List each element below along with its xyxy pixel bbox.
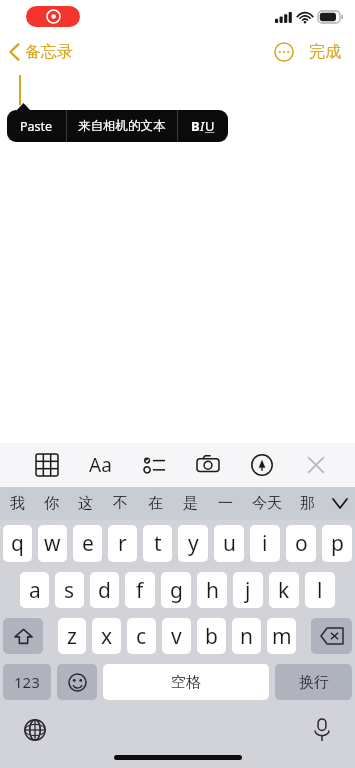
- button[interactable]: g: [161, 572, 191, 608]
- staticText: h: [206, 576, 219, 605]
- button[interactable]: Dictate: [311, 715, 333, 745]
- button[interactable]: 是: [173, 487, 208, 520]
- button[interactable]: i: [250, 525, 280, 562]
- staticText: m: [272, 622, 292, 651]
- button[interactable]: w: [38, 525, 67, 562]
- staticText: B: [191, 117, 200, 135]
- staticText: o: [295, 529, 308, 558]
- button[interactable]: Close keyboard: [299, 448, 333, 482]
- staticText: I: [200, 117, 205, 135]
- staticText: t: [154, 529, 162, 558]
- staticText: e: [82, 529, 94, 558]
- staticText: 在: [148, 494, 163, 513]
- button[interactable]: 在: [138, 487, 173, 520]
- staticText: d: [98, 576, 111, 605]
- button[interactable]: 备忘录: [0, 38, 81, 66]
- staticText: 不: [113, 494, 128, 513]
- button[interactable]: q: [3, 525, 32, 562]
- button[interactable]: h: [197, 572, 227, 608]
- button[interactable]: 这: [68, 487, 103, 520]
- button[interactable]: t: [143, 525, 172, 562]
- button[interactable]: 那: [290, 487, 325, 520]
- staticText: 来自相机的文本: [78, 118, 166, 134]
- staticText: j: [245, 576, 251, 605]
- button[interactable]: x: [92, 618, 121, 654]
- staticText: q: [11, 529, 24, 558]
- button[interactable]: l: [305, 572, 335, 608]
- staticText: 我: [10, 494, 25, 513]
- button[interactable]: Emoji: [57, 664, 97, 700]
- staticText: x: [101, 622, 113, 651]
- button[interactable]: 空格: [103, 664, 269, 700]
- button[interactable]: r: [108, 525, 137, 562]
- staticText: 空格: [171, 673, 201, 692]
- staticText: p: [331, 529, 344, 558]
- button[interactable]: c: [127, 618, 156, 654]
- button[interactable]: m: [267, 618, 296, 654]
- staticText: 是: [183, 494, 198, 513]
- button[interactable]: e: [73, 525, 102, 562]
- staticText: v: [171, 622, 182, 651]
- button[interactable]: Change keyboard: [20, 715, 50, 745]
- button[interactable]: Format text: [83, 446, 118, 484]
- staticText: c: [136, 622, 147, 651]
- button[interactable]: 今天: [243, 487, 290, 520]
- button[interactable]: Checklist: [137, 448, 171, 482]
- staticText: f: [136, 576, 144, 605]
- button[interactable]: a: [20, 572, 49, 608]
- button[interactable]: v: [162, 618, 191, 654]
- staticText: y: [188, 529, 199, 558]
- staticText: 换行: [299, 673, 329, 692]
- button[interactable]: y: [178, 525, 208, 562]
- button[interactable]: B: [178, 110, 228, 142]
- button[interactable]: Paste: [7, 110, 66, 142]
- staticText: U: [205, 117, 215, 135]
- staticText: w: [44, 529, 61, 558]
- staticText: g: [170, 576, 183, 605]
- staticText: 一: [218, 494, 233, 513]
- staticText: a: [29, 576, 41, 605]
- staticText: 你: [44, 494, 59, 513]
- button[interactable]: 你: [34, 487, 68, 520]
- button[interactable]: u: [214, 525, 244, 562]
- button[interactable]: 我: [0, 487, 34, 520]
- button[interactable]: Camera: [191, 448, 225, 482]
- staticText: 这: [78, 494, 93, 513]
- button[interactable]: Markup: [245, 448, 279, 482]
- staticText: 备忘录: [25, 42, 73, 62]
- staticText: s: [64, 576, 75, 605]
- button[interactable]: 来自相机的文本: [67, 110, 177, 142]
- button[interactable]: b: [197, 618, 226, 654]
- staticText: 那: [300, 494, 315, 513]
- staticText: z: [67, 622, 77, 651]
- button[interactable]: d: [90, 572, 119, 608]
- button[interactable]: 不: [103, 487, 138, 520]
- button[interactable]: k: [269, 572, 299, 608]
- button[interactable]: Expand candidates: [325, 487, 355, 520]
- staticText: i: [262, 529, 268, 558]
- staticText: 今天: [252, 494, 282, 513]
- button[interactable]: 完成: [307, 38, 343, 66]
- staticText: 123: [14, 672, 40, 692]
- staticText: l: [317, 576, 323, 605]
- staticText: n: [240, 622, 253, 651]
- button[interactable]: More options: [270, 38, 298, 66]
- button[interactable]: Backspace: [311, 618, 352, 654]
- button[interactable]: s: [55, 572, 84, 608]
- button[interactable]: 一: [208, 487, 243, 520]
- staticText: k: [278, 576, 290, 605]
- staticText: b: [205, 622, 218, 651]
- button[interactable]: j: [233, 572, 263, 608]
- button[interactable]: z: [58, 618, 86, 654]
- staticText: Aa: [89, 452, 112, 478]
- staticText: 完成: [309, 42, 341, 62]
- button[interactable]: n: [232, 618, 261, 654]
- staticText: u: [223, 529, 236, 558]
- button[interactable]: o: [286, 525, 316, 562]
- button[interactable]: 换行: [275, 664, 352, 700]
- button[interactable]: Table: [30, 448, 64, 482]
- button[interactable]: f: [125, 572, 155, 608]
- button[interactable]: 123: [3, 664, 51, 700]
- button[interactable]: p: [322, 525, 352, 562]
- button[interactable]: Shift: [3, 618, 43, 654]
